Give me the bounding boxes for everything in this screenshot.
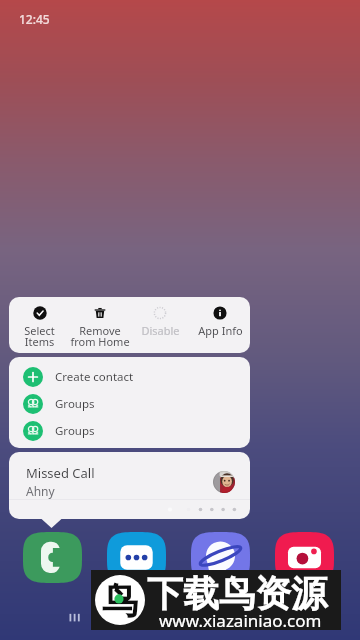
- staticText: Ahny: [26, 483, 55, 499]
- button[interactable]: Remove from Home: [70, 297, 130, 349]
- staticText: 12:45: [19, 11, 50, 27]
- button[interactable]: Disable: [130, 297, 190, 338]
- button[interactable]: Select Items: [9, 297, 70, 349]
- staticText: App Info: [198, 323, 243, 338]
- staticText: Disable: [141, 323, 180, 338]
- staticText: www.xiazainiao.com: [159, 609, 322, 632]
- button[interactable]: Groups: [9, 417, 250, 444]
- staticText: Groups: [55, 396, 95, 412]
- button[interactable]: Phone: [23, 532, 82, 583]
- button[interactable]: Groups: [9, 390, 250, 417]
- button[interactable]: Recents: [62, 606, 90, 634]
- button[interactable]: Camera: [275, 532, 334, 583]
- staticText: 鸟: [102, 578, 138, 623]
- staticText: Create contact: [55, 369, 134, 385]
- staticText: Groups: [55, 423, 95, 439]
- button[interactable]: Internet: [191, 532, 250, 583]
- staticText: 下载鸟资源: [147, 571, 327, 616]
- button[interactable]: App Info: [190, 297, 250, 338]
- button[interactable]: Create contact: [9, 363, 250, 390]
- staticText: Remove from Home: [70, 323, 130, 349]
- staticText: Select Items: [24, 323, 55, 349]
- staticText: Missed Call: [26, 464, 95, 482]
- button[interactable]: Messages: [107, 532, 166, 583]
